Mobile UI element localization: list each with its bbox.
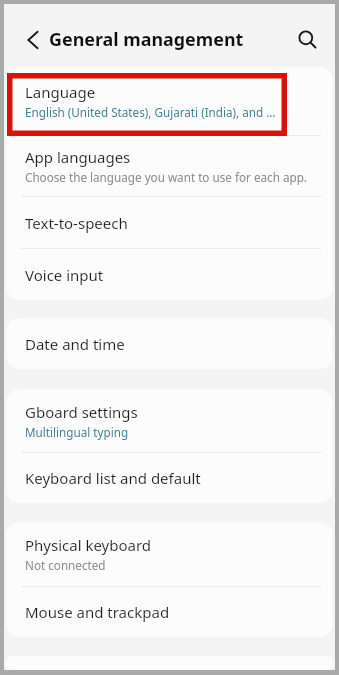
button[interactable]: App languages: [6, 136, 333, 196]
staticText: Date and time: [25, 334, 125, 354]
staticText: Gboard settings: [25, 402, 138, 422]
staticText: Keyboard list and default: [25, 468, 201, 488]
button[interactable]: Text-to-speech: [6, 197, 333, 248]
staticText: Language: [25, 82, 96, 102]
staticText: English (United States), Gujarati (India…: [25, 104, 276, 120]
button[interactable]: Mouse and trackpad: [6, 587, 333, 637]
button[interactable]: Search: [289, 21, 325, 57]
staticText: Choose the language you want to use for …: [25, 169, 307, 185]
button[interactable]: Physical keyboard: [6, 522, 333, 586]
button[interactable]: Voice input: [6, 249, 333, 300]
staticText: Physical keyboard: [25, 535, 152, 555]
staticText: Multilingual typing: [25, 424, 129, 440]
staticText: Text-to-speech: [25, 213, 128, 233]
button[interactable]: Date and time: [6, 318, 333, 369]
staticText: App languages: [25, 147, 131, 167]
button[interactable]: Back: [17, 24, 48, 55]
staticText: Mouse and trackpad: [25, 602, 170, 622]
staticText: Voice input: [25, 265, 104, 285]
staticText: General management: [49, 27, 244, 51]
button[interactable]: Keyboard list and default: [6, 453, 333, 503]
staticText: Not connected: [25, 557, 106, 573]
button[interactable]: Gboard settings: [6, 389, 333, 452]
button[interactable]: Language: [6, 67, 333, 135]
